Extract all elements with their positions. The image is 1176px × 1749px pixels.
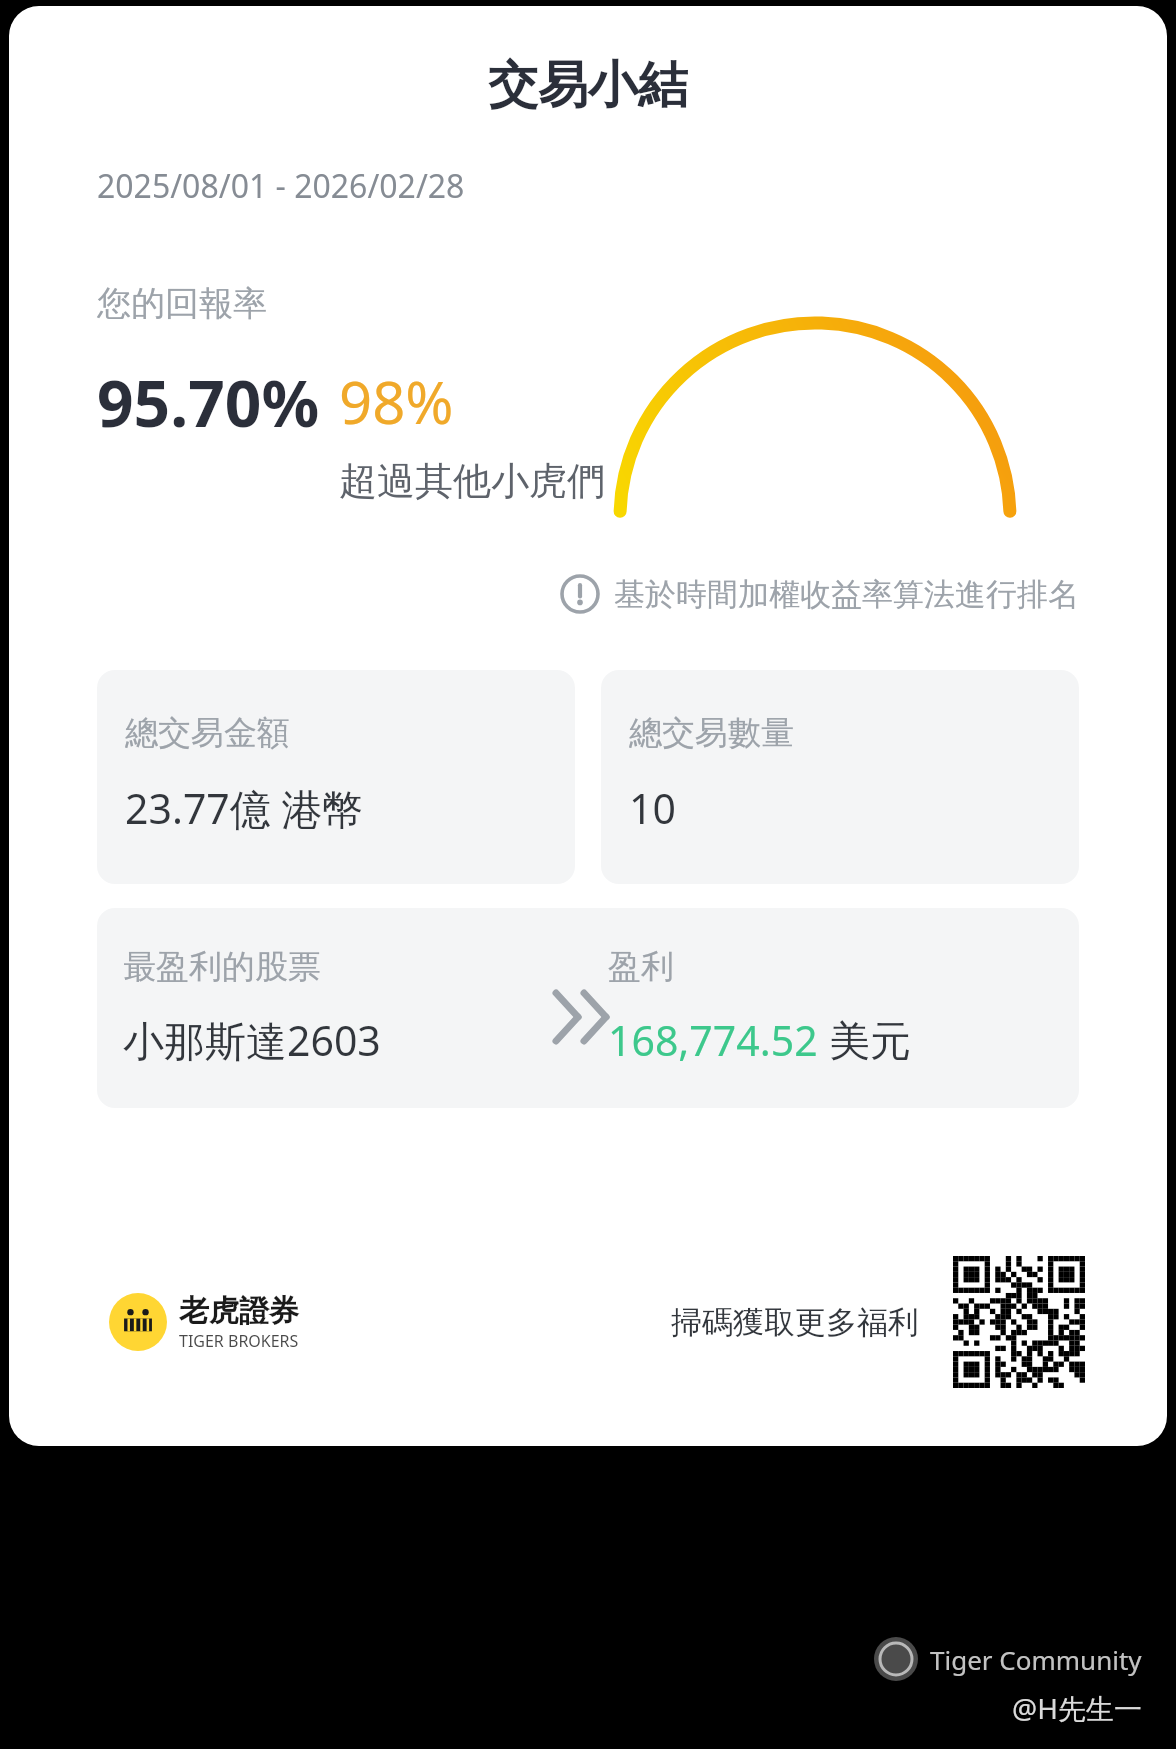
- button[interactable]: 總交易金額: [97, 670, 575, 884]
- staticText: 168,774.52: [608, 1012, 829, 1068]
- staticText: 總交易金額: [125, 712, 290, 754]
- button[interactable]: 老虎證券: [109, 1292, 299, 1352]
- staticText: 小那斯達2603: [123, 1012, 381, 1068]
- other: QR code: [953, 1256, 1085, 1388]
- staticText: 美元: [829, 1016, 911, 1068]
- staticText: 老虎證券: [179, 1292, 299, 1330]
- staticText: 基於時間加權收益率算法進行排名: [614, 575, 1079, 614]
- staticText: @H先生一: [1012, 1689, 1142, 1727]
- staticText: 95.70%: [97, 359, 320, 446]
- staticText: 98%: [339, 362, 454, 441]
- staticText: 10: [629, 780, 676, 836]
- staticText: 盈利: [608, 946, 674, 988]
- staticText: 總交易數量: [629, 712, 794, 754]
- staticText: Tiger Community: [930, 1642, 1142, 1677]
- staticText: 最盈利的股票: [123, 946, 321, 988]
- button[interactable]: 總交易數量: [601, 670, 1079, 884]
- staticText: 2025/08/01 - 2026/02/28: [97, 164, 465, 208]
- button[interactable]: 最盈利的股票: [97, 908, 1079, 1108]
- staticText: 超過其他小虎們: [339, 457, 605, 505]
- staticText: 掃碼獲取更多福利: [671, 1303, 919, 1342]
- staticText: 23.77億 港幣: [125, 780, 364, 836]
- other: Details: [546, 979, 608, 1035]
- staticText: TIGER BROKERS: [179, 1330, 299, 1352]
- staticText: 您的回報率: [97, 282, 267, 325]
- staticText: 交易小結: [488, 54, 688, 117]
